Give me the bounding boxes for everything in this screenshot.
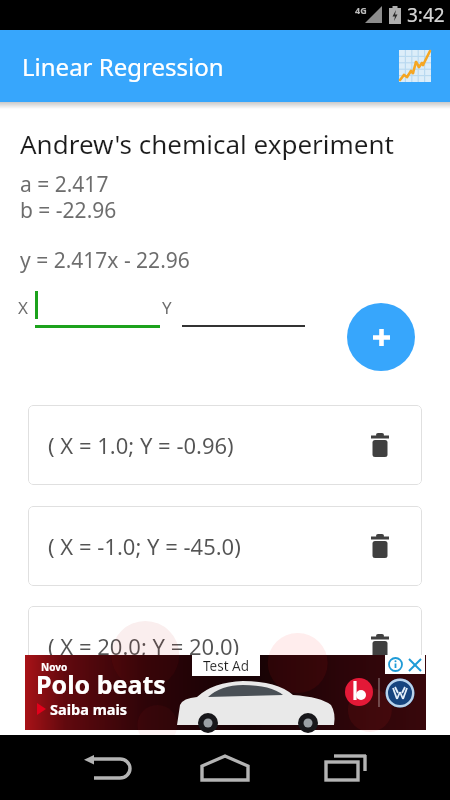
button[interactable] <box>371 634 389 658</box>
staticText: X <box>18 296 28 319</box>
staticText: Novo <box>41 660 68 674</box>
button[interactable]: ( X = -1.0; Y = -45.0) <box>28 506 422 586</box>
button[interactable] <box>371 534 389 558</box>
staticText: ( X = 1.0; Y = -0.96) <box>48 430 234 460</box>
button[interactable] <box>80 755 132 781</box>
button[interactable] <box>322 754 368 782</box>
staticText: Y <box>162 296 172 319</box>
button[interactable]: ( X = 1.0; Y = -0.96) <box>28 405 422 485</box>
button[interactable] <box>399 50 431 82</box>
staticText: Andrew's chemical experiment <box>20 126 394 161</box>
button[interactable] <box>385 655 405 674</box>
staticText: Linear Regression <box>22 50 224 83</box>
button[interactable] <box>347 303 415 371</box>
staticText: y = 2.417x - 22.96 <box>20 246 190 275</box>
button[interactable] <box>200 754 250 782</box>
staticText: ( X = -1.0; Y = -45.0) <box>48 531 241 561</box>
button[interactable] <box>405 655 425 674</box>
staticText: Polo beats <box>36 667 166 701</box>
staticText: Test Ad <box>203 657 249 675</box>
button[interactable] <box>371 433 389 457</box>
staticText: b = -22.96 <box>20 196 117 225</box>
staticText: 4G <box>355 4 367 16</box>
button[interactable]: ( X = 20.0; Y = 20.0) <box>28 606 422 686</box>
staticText: ( X = 20.0; Y = 20.0) <box>48 631 240 661</box>
button[interactable]: Novo <box>25 655 426 730</box>
staticText: Saiba mais <box>50 699 128 719</box>
staticText: 3:42 <box>407 2 445 28</box>
staticText: a = 2.417 <box>20 170 109 199</box>
